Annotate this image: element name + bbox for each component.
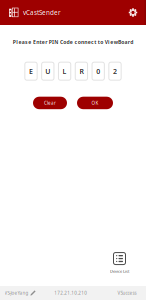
staticText: Clear — [44, 100, 56, 106]
staticText: VSuccess — [118, 290, 137, 296]
staticText: vCastSender — [23, 8, 61, 17]
staticText: 172.21.10.210 — [54, 290, 87, 296]
button[interactable]: OK — [77, 97, 113, 109]
staticText: Device List — [110, 269, 129, 274]
staticText: 2 — [113, 66, 117, 76]
staticText: R — [79, 66, 83, 76]
staticText: E — [29, 66, 33, 76]
button[interactable]: VS-JoeYang — [0, 290, 36, 296]
staticText: 0 — [96, 66, 100, 76]
button[interactable]: Device List — [110, 253, 146, 274]
staticText: U — [45, 66, 50, 76]
staticText: OK — [91, 100, 98, 106]
staticText: L — [63, 66, 67, 76]
staticText: VS-JoeYang — [5, 290, 29, 296]
staticText: Please Enter PIN Code connect to ViewBoa… — [13, 38, 133, 45]
button[interactable]: Settings — [128, 7, 146, 17]
button[interactable]: Clear — [33, 97, 67, 109]
